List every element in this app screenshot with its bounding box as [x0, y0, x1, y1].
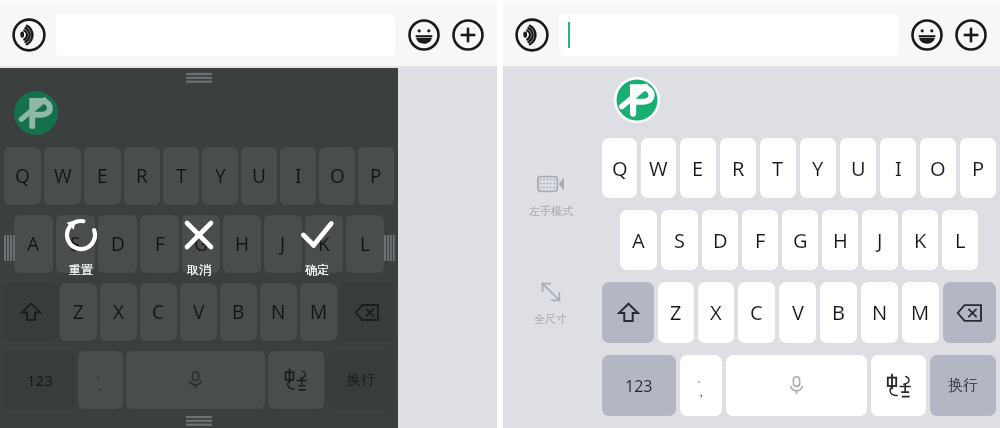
button[interactable]: U — [840, 138, 876, 198]
button[interactable]: Z — [658, 282, 694, 343]
button[interactable]: T — [760, 138, 796, 198]
button[interactable]: M — [300, 283, 337, 341]
button[interactable]: C — [738, 282, 775, 343]
button[interactable]: F — [140, 215, 179, 273]
staticText: W — [649, 155, 668, 182]
button[interactable]: I — [280, 147, 316, 205]
button[interactable]: Emoji — [405, 16, 443, 54]
button[interactable]: S — [661, 210, 698, 270]
button[interactable]: K — [902, 210, 938, 270]
button[interactable]: N — [861, 282, 898, 343]
button[interactable]: A — [620, 210, 657, 270]
button[interactable]: X — [100, 283, 137, 341]
button[interactable]: G — [782, 210, 818, 270]
button[interactable]: T — [163, 147, 199, 205]
button[interactable] — [4, 283, 57, 341]
staticText: U — [851, 155, 866, 182]
button[interactable]: E — [680, 138, 716, 198]
button[interactable] — [340, 283, 394, 341]
button[interactable]: R — [720, 138, 756, 198]
button[interactable]: K — [305, 215, 343, 273]
button[interactable]: C — [140, 283, 177, 341]
staticText: Y — [215, 163, 226, 189]
button[interactable] — [871, 355, 926, 416]
button[interactable]: L — [942, 210, 978, 270]
button[interactable]: Q — [4, 147, 41, 205]
button[interactable]: I — [880, 138, 916, 198]
button[interactable]: M — [902, 282, 939, 343]
staticText: 取消 — [187, 262, 211, 277]
button[interactable]: U — [241, 147, 277, 205]
button[interactable]: 取消 — [162, 216, 236, 277]
button[interactable] — [943, 282, 996, 343]
button[interactable] — [726, 355, 867, 416]
button[interactable]: More — [952, 16, 990, 54]
button[interactable]: Voice — [10, 16, 48, 54]
button[interactable]: W — [641, 138, 676, 198]
button[interactable]: 确定 — [280, 216, 354, 277]
button[interactable]: D — [98, 215, 137, 273]
button[interactable] — [602, 282, 654, 343]
button[interactable]: V — [779, 282, 816, 343]
staticText: I — [295, 163, 302, 189]
button[interactable] — [268, 351, 324, 409]
staticText: 。 — [697, 373, 706, 384]
button[interactable]: H — [223, 215, 261, 273]
staticText: P — [370, 163, 382, 189]
button[interactable]: O — [920, 138, 956, 198]
staticText: X — [710, 299, 722, 326]
staticText: H — [833, 227, 848, 254]
button[interactable]: 。 — [680, 355, 722, 416]
button[interactable]: V — [180, 283, 217, 341]
staticText: J — [280, 231, 286, 257]
button[interactable]: P — [358, 147, 394, 205]
button[interactable]: N — [260, 283, 297, 341]
staticText: K — [914, 227, 927, 254]
button[interactable]: S — [56, 215, 95, 273]
staticText: Q — [15, 163, 30, 189]
button[interactable]: 123 — [4, 351, 75, 409]
staticText: G — [194, 231, 208, 257]
button[interactable]: More — [449, 16, 487, 54]
button[interactable]: Z — [60, 283, 97, 341]
button[interactable]: 换行 — [930, 355, 996, 416]
staticText: L — [955, 227, 966, 254]
button[interactable]: E — [84, 147, 121, 205]
button[interactable]: 换行 — [327, 351, 394, 409]
button[interactable]: H — [822, 210, 858, 270]
staticText: D — [713, 227, 728, 254]
staticText: Z — [670, 299, 682, 326]
staticText: T — [176, 163, 187, 189]
staticText: J — [877, 227, 883, 254]
button[interactable]: B — [220, 283, 257, 341]
staticText: V — [193, 299, 205, 325]
button[interactable]: Y — [202, 147, 238, 205]
button[interactable]: 重置 — [44, 216, 118, 277]
button[interactable]: D — [702, 210, 738, 270]
button[interactable] — [559, 14, 898, 56]
button[interactable]: 123 — [602, 355, 676, 416]
button[interactable]: Voice — [513, 16, 551, 54]
button[interactable]: J — [862, 210, 898, 270]
button[interactable]: G — [182, 215, 220, 273]
staticText: Z — [73, 299, 84, 325]
button[interactable]: Q — [602, 138, 637, 198]
button[interactable]: Emoji — [908, 16, 946, 54]
button[interactable]: F — [742, 210, 778, 270]
button[interactable]: W — [44, 147, 81, 205]
button[interactable]: X — [698, 282, 734, 343]
button[interactable]: Y — [800, 138, 836, 198]
staticText: 123 — [27, 370, 53, 390]
button[interactable]: J — [264, 215, 302, 273]
button[interactable]: O — [319, 147, 355, 205]
button[interactable]: P — [960, 138, 996, 198]
button[interactable]: 左手模式 — [525, 166, 577, 222]
button[interactable]: R — [124, 147, 160, 205]
button[interactable]: B — [820, 282, 857, 343]
button[interactable]: L — [346, 215, 384, 273]
button[interactable]: 全尺寸 — [530, 274, 571, 330]
button[interactable]: A — [14, 215, 53, 273]
